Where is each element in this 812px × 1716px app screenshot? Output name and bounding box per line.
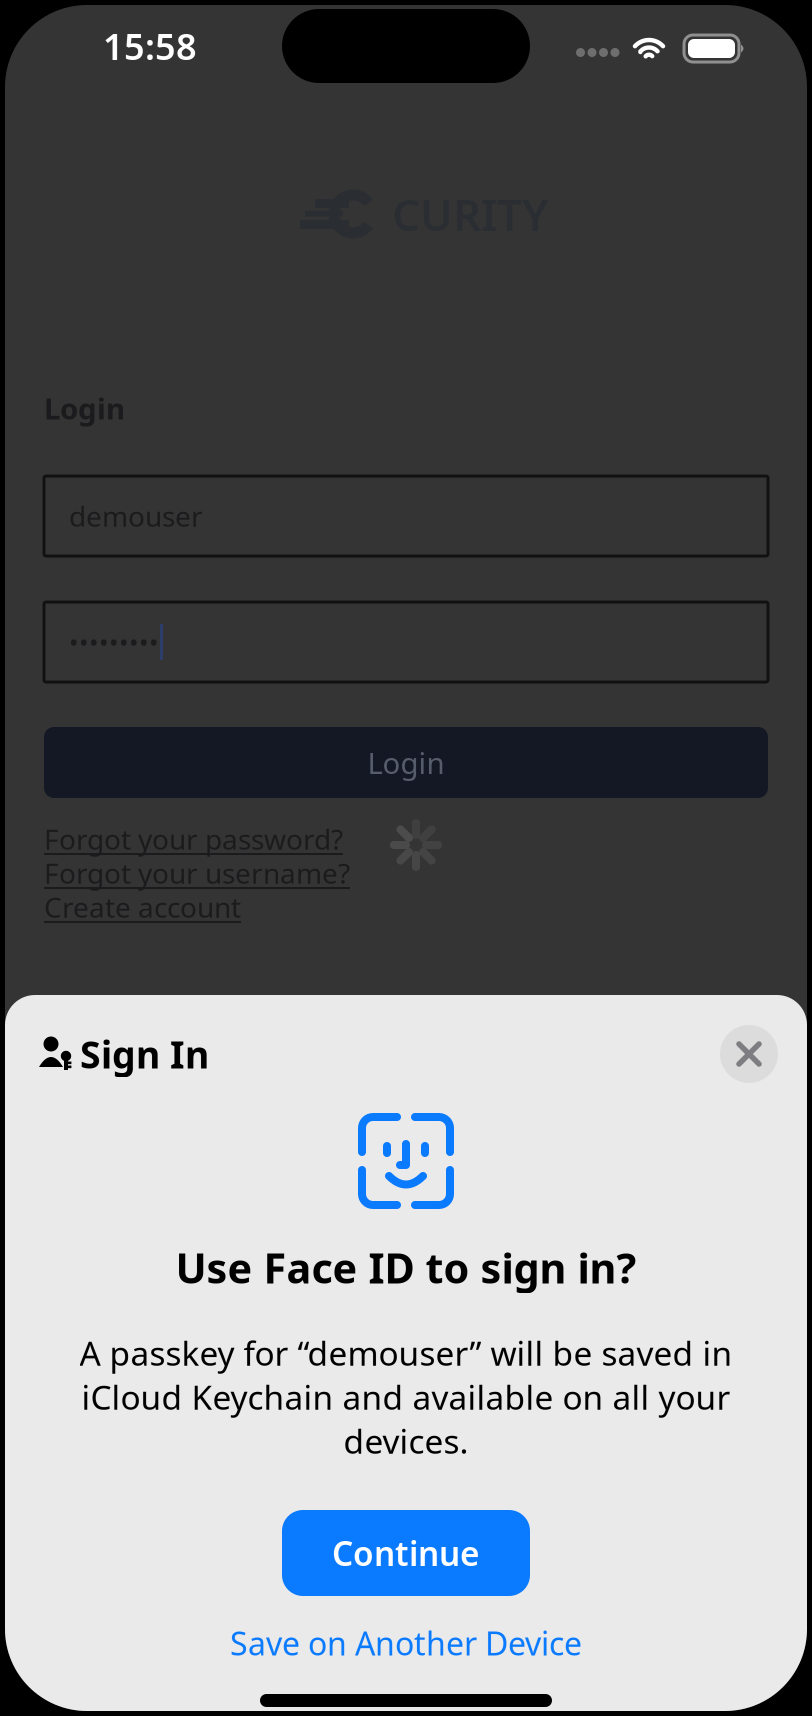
staticText: ••••••••• xyxy=(69,625,159,659)
button[interactable]: Save on Another Device xyxy=(196,1619,616,1667)
staticText: devices. xyxy=(343,1419,468,1463)
button[interactable]: Forgot your password? xyxy=(44,825,343,859)
staticText: Sign In xyxy=(80,1029,209,1079)
staticText: CURITY xyxy=(392,185,549,243)
staticText: iCloud Keychain and available on all you… xyxy=(81,1375,730,1419)
staticText: Use Face ID to sign in? xyxy=(175,1240,636,1295)
staticText: Forgot your password? xyxy=(44,820,343,858)
staticText: Forgot your username? xyxy=(44,854,350,892)
staticText: Continue xyxy=(332,1531,480,1575)
staticText: Create account xyxy=(44,888,241,926)
button[interactable]: Close xyxy=(720,1025,778,1083)
staticText: demouser xyxy=(69,497,203,535)
staticText: Save on Another Device xyxy=(230,1622,582,1664)
button[interactable]: Create account xyxy=(44,893,241,927)
staticText: 15:58 xyxy=(103,22,197,70)
staticText: Login xyxy=(44,388,125,427)
button[interactable]: Continue xyxy=(282,1510,530,1596)
button[interactable]: Login xyxy=(44,727,768,798)
staticText: A passkey for “demouser” will be saved i… xyxy=(79,1331,732,1375)
button[interactable]: Forgot your username? xyxy=(44,859,350,893)
staticText: Login xyxy=(367,743,444,782)
